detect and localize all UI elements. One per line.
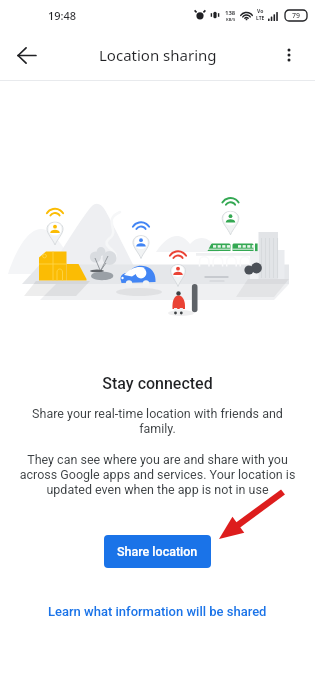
staticText: 19:48: [48, 8, 77, 23]
staticText: LTE: [256, 15, 265, 22]
staticText: 138: [225, 9, 236, 17]
staticText: Stay connected: [0, 374, 315, 393]
staticText: Learn what information will be shared: [48, 604, 267, 619]
staticText: Vo: [257, 8, 264, 15]
button[interactable]: More options: [269, 35, 309, 75]
staticText: Share your real-time location with frien…: [22, 406, 293, 436]
button[interactable]: Share location: [104, 535, 211, 568]
button[interactable]: Back: [6, 35, 46, 75]
staticText: KB/S: [226, 17, 236, 22]
button[interactable]: Learn what information will be shared: [42, 598, 273, 625]
staticText: 79: [292, 11, 301, 21]
staticText: They can see where you are and share wit…: [16, 452, 299, 497]
staticText: Share location: [117, 544, 198, 559]
staticText: Location sharing: [99, 45, 217, 65]
